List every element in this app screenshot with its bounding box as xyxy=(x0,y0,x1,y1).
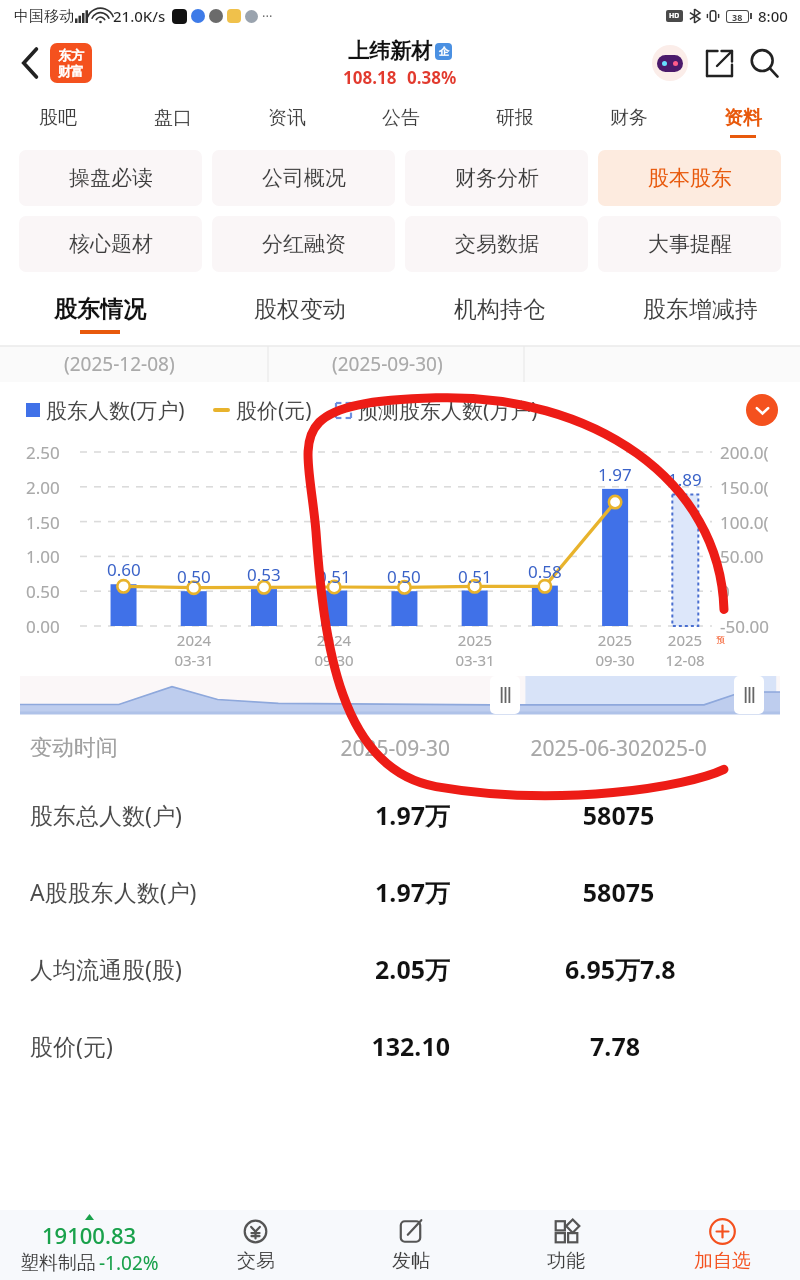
staticText: 核心题材 xyxy=(69,231,153,257)
staticText: 8:00 xyxy=(758,6,788,26)
button[interactable]: 交易数据 xyxy=(405,216,588,272)
staticText: 股东人数(万户) xyxy=(46,396,185,425)
staticText: A股股东人数(户) xyxy=(30,876,260,907)
staticText: 功能 xyxy=(547,1249,585,1273)
staticText: 变动时间 xyxy=(30,734,260,762)
staticText: 2025-06-30 xyxy=(450,734,640,763)
staticText: 2025 12-08 xyxy=(655,630,715,670)
staticText: 2.50 xyxy=(26,441,60,464)
button[interactable]: 股权变动 xyxy=(200,282,400,346)
staticText: 股本股东 xyxy=(648,165,732,191)
staticText: 0.60 xyxy=(107,558,141,581)
button[interactable]: 分红融资 xyxy=(212,216,395,272)
button[interactable]: 大事提醒 xyxy=(598,216,781,272)
button[interactable]: 公司概况 xyxy=(212,150,395,206)
button[interactable]: Back xyxy=(10,43,50,83)
staticText: 股东增减持 xyxy=(643,295,758,324)
staticText: 0.50 xyxy=(387,565,421,588)
staticText: 150.0( xyxy=(720,476,769,499)
button[interactable]: 股东情况 xyxy=(0,282,200,346)
staticText: 2.05万 xyxy=(260,952,450,986)
button[interactable]: 核心题材 xyxy=(19,216,202,272)
staticText: 0.53 xyxy=(247,563,281,586)
staticText: 1.97万 xyxy=(260,875,450,909)
button[interactable]: 19100.83 xyxy=(0,1210,178,1280)
staticText: 预测股东人数(万户) xyxy=(357,396,538,425)
button[interactable]: Expand xyxy=(746,394,778,426)
staticText: 财务分析 xyxy=(455,165,539,191)
staticText: 公司概况 xyxy=(262,165,346,191)
staticText: 2025-09-30 xyxy=(260,734,450,763)
staticText: 7.8 xyxy=(640,952,676,986)
button[interactable]: 资讯 xyxy=(230,94,344,150)
button[interactable]: 机构持仓 xyxy=(400,282,600,346)
button[interactable]: Share xyxy=(698,42,740,84)
button[interactable]: 财务 xyxy=(572,94,686,150)
staticText: 中国移动 xyxy=(14,7,74,26)
staticText: 2024 09-30 xyxy=(304,630,364,670)
button[interactable]: 股本股东 xyxy=(598,150,781,206)
staticText: 0.38% xyxy=(407,66,457,89)
staticText: 股权变动 xyxy=(254,295,346,324)
staticText: 21.0K/s xyxy=(113,6,166,26)
staticText: 2025 09-30 xyxy=(585,630,645,670)
staticText: 研报 xyxy=(496,106,534,130)
staticText: 5 xyxy=(640,875,655,909)
button[interactable]: 盘口 xyxy=(115,94,230,150)
button[interactable]: A股股东人数(户) xyxy=(0,853,800,930)
staticText: 5807 xyxy=(450,798,640,832)
button[interactable]: 股东总人数(户) xyxy=(0,776,800,853)
button[interactable]: 财务分析 xyxy=(405,150,588,206)
button[interactable]: Range handle xyxy=(734,676,764,714)
staticText: 2025-0 xyxy=(640,734,707,763)
button[interactable]: 人均流通股(股) xyxy=(0,930,800,1007)
button[interactable]: East Money xyxy=(50,43,92,83)
staticText: (2025-09-30) xyxy=(332,351,443,377)
button[interactable]: 功能 xyxy=(488,1210,644,1280)
button[interactable]: 发帖 xyxy=(333,1210,488,1280)
button[interactable]: 操盘必读 xyxy=(19,150,202,206)
staticText: 1.89 xyxy=(668,468,702,491)
staticText: 资讯 xyxy=(268,106,306,130)
staticText: 0.50 xyxy=(26,580,60,603)
button[interactable]: Range handle xyxy=(490,676,520,714)
staticText: 分红融资 xyxy=(262,231,346,257)
button[interactable]: 加自选 xyxy=(644,1210,800,1280)
staticText: (2025-12-08) xyxy=(64,351,175,377)
button[interactable]: 资料 xyxy=(686,94,800,150)
staticText: 7.78 xyxy=(450,1029,640,1063)
staticText: 50.00 xyxy=(720,545,764,568)
button[interactable]: 股东增减持 xyxy=(600,282,800,346)
staticText: 0.00 xyxy=(26,615,60,638)
staticText: 公告 xyxy=(382,106,420,130)
staticText: 资料 xyxy=(724,106,762,130)
staticText: 200.0( xyxy=(720,441,769,464)
staticText: 加自选 xyxy=(694,1249,751,1273)
staticText: 0 xyxy=(720,580,730,603)
staticText: 人均流通股(股) xyxy=(30,953,260,984)
staticText: HD xyxy=(669,11,680,21)
staticText: 2.00 xyxy=(26,476,60,499)
button[interactable]: 股吧 xyxy=(0,94,115,150)
staticText: ··· xyxy=(262,7,273,25)
staticText: 6.95万 xyxy=(450,952,640,986)
staticText: 股价(元) xyxy=(236,396,312,425)
staticText: 132.10 xyxy=(260,1029,450,1063)
button[interactable]: 股价(元) xyxy=(0,1007,800,1084)
button[interactable]: Assistant xyxy=(648,41,692,85)
staticText: 108.18 xyxy=(343,66,397,89)
staticText: 0.51 xyxy=(317,565,351,588)
button[interactable]: Search xyxy=(742,41,786,85)
staticText: 0.51 xyxy=(458,565,492,588)
staticText: 东方 xyxy=(58,47,84,63)
staticText: 19100.83 xyxy=(42,1220,137,1250)
button[interactable]: 交易 xyxy=(178,1210,333,1280)
staticText: 5807 xyxy=(450,875,640,909)
staticText: 1.97 xyxy=(598,463,632,486)
button[interactable]: 研报 xyxy=(458,94,572,150)
staticText: 财务 xyxy=(610,106,648,130)
staticText: 1.97万 xyxy=(260,798,450,832)
staticText: 预 xyxy=(716,634,725,645)
button[interactable]: 公告 xyxy=(344,94,458,150)
staticText: 交易数据 xyxy=(455,231,539,257)
